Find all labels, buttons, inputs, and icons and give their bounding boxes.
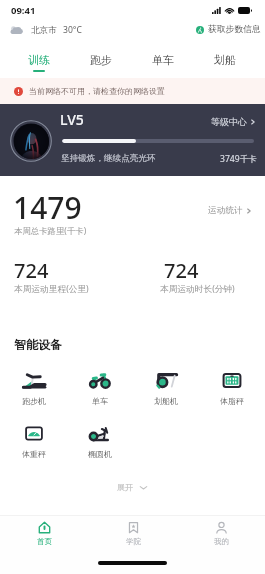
button[interactable]: 用户头像	[10, 120, 52, 162]
button[interactable]: 获取步数信息	[196, 24, 261, 35]
staticText: 当前网络不可用，请检查你的网络设置	[29, 86, 165, 96]
staticText: 划船机	[154, 396, 178, 406]
staticText: 本周运动里程(公里)	[14, 283, 89, 295]
staticText: 跑步	[90, 53, 112, 67]
button[interactable]: 体重秤	[0, 425, 67, 459]
staticText: 智能设备	[14, 337, 62, 352]
staticText: 首页	[37, 537, 52, 546]
staticText: 3749千卡	[220, 153, 257, 165]
button[interactable]: 划船机	[133, 372, 199, 406]
staticText: 30°C	[63, 24, 82, 36]
button[interactable]: 学院	[89, 521, 177, 546]
button[interactable]: 跑步	[70, 53, 132, 78]
staticText: 本周总卡路里(千卡)	[14, 225, 87, 236]
staticText: 学院	[126, 537, 141, 546]
button[interactable]: 等级中心	[211, 116, 256, 127]
staticText: 等级中心	[211, 116, 247, 127]
button[interactable]: 我的	[177, 521, 265, 546]
button[interactable]: 跑步机	[0, 372, 67, 406]
staticText: 724	[14, 257, 49, 284]
staticText: LV5	[60, 110, 84, 129]
staticText: 09:41	[11, 4, 36, 17]
staticText: 训练	[28, 53, 50, 67]
button[interactable]: 首页	[0, 521, 89, 546]
staticText: 体脂秤	[220, 396, 244, 406]
staticText: 展开	[117, 482, 133, 492]
staticText: 体重秤	[22, 449, 46, 459]
staticText: 坚持锻炼，继续点亮光环	[61, 153, 156, 164]
staticText: 单车	[152, 53, 174, 67]
staticText: 单车	[92, 396, 108, 406]
staticText: 北京市	[31, 25, 57, 36]
staticText: 724	[164, 257, 199, 284]
staticText: 我的	[214, 537, 229, 546]
button[interactable]: 椭圆机	[67, 425, 133, 459]
staticText: 获取步数信息	[208, 24, 261, 35]
button[interactable]: 体脂秤	[199, 372, 265, 406]
button[interactable]: 单车	[132, 53, 194, 78]
staticText: 划船	[214, 53, 236, 67]
staticText: 运动统计	[208, 205, 243, 216]
button[interactable]: 划船	[194, 53, 256, 78]
staticText: 跑步机	[22, 396, 46, 406]
staticText: 椭圆机	[88, 449, 112, 459]
button[interactable]: 单车	[67, 372, 133, 406]
button[interactable]: 展开	[0, 482, 265, 492]
button[interactable]: 运动统计	[208, 205, 252, 216]
button[interactable]: 训练	[8, 53, 70, 78]
staticText: 1479	[13, 187, 82, 228]
staticText: 本周运动时长(分钟)	[160, 283, 235, 295]
